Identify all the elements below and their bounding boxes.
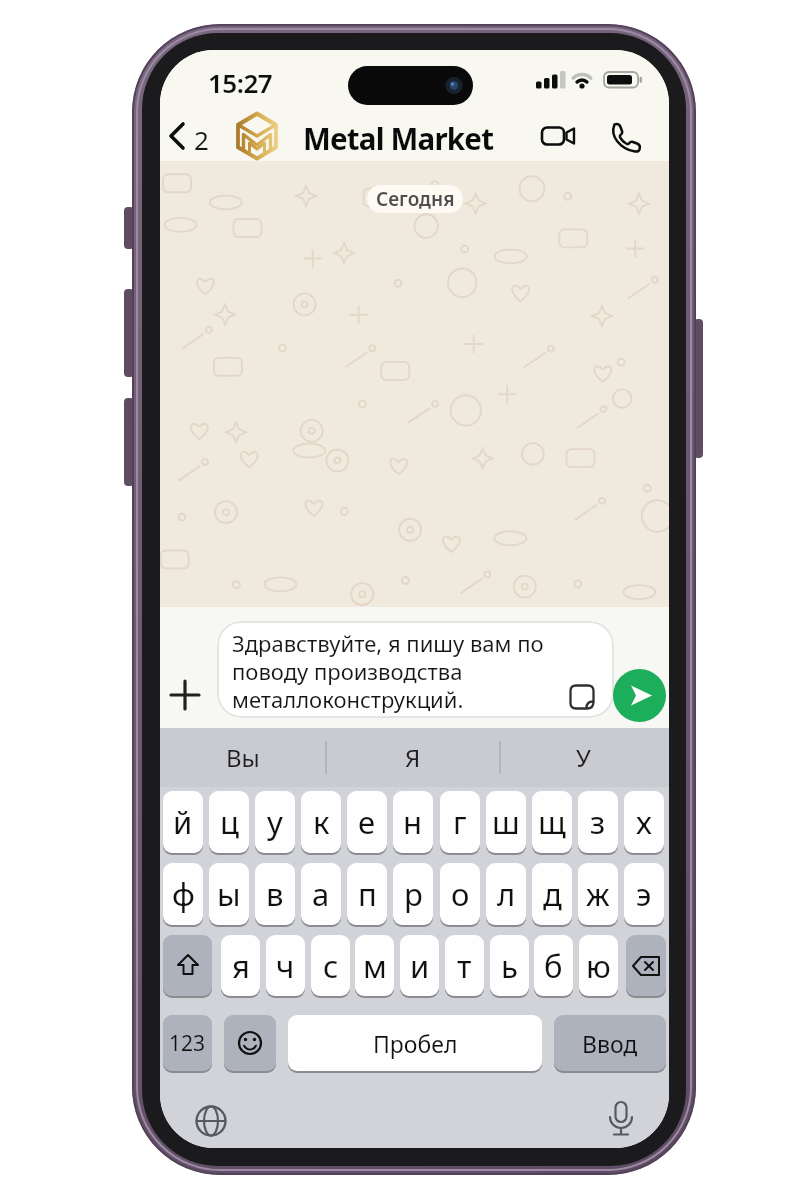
staticText: ы (217, 873, 241, 915)
staticText: ю (586, 945, 611, 987)
button[interactable]: х (624, 791, 664, 853)
staticText: я (232, 945, 250, 987)
staticText: Вы (226, 741, 260, 774)
button[interactable]: ф (163, 863, 203, 925)
button[interactable]: Ввод (554, 1015, 666, 1071)
staticText: ж (586, 873, 610, 915)
button[interactable]: г (440, 791, 480, 853)
button[interactable]: у (255, 791, 295, 853)
staticText: Пробел (373, 1028, 458, 1059)
button[interactable]: й (163, 791, 203, 853)
staticText: ф (172, 873, 195, 915)
button[interactable] (162, 112, 362, 160)
button[interactable]: к (301, 791, 341, 853)
button[interactable]: э (624, 863, 664, 925)
staticText: с (323, 945, 339, 987)
staticText: л (497, 873, 516, 915)
button[interactable]: м (355, 935, 394, 996)
button[interactable]: т (445, 935, 484, 996)
button[interactable]: л (486, 863, 526, 925)
staticText: Ввод (582, 1028, 638, 1059)
button[interactable] (626, 935, 666, 996)
staticText: б (544, 945, 563, 987)
button[interactable]: е (347, 791, 387, 853)
staticText: р (404, 873, 423, 915)
button[interactable]: р (393, 863, 433, 925)
button[interactable] (180, 1090, 242, 1148)
button[interactable]: с (311, 935, 350, 996)
staticText: в (266, 873, 284, 915)
staticText: Здравствуйте, я пишу вам по поводу произ… (232, 628, 544, 715)
button[interactable]: ж (578, 863, 618, 925)
button[interactable]: щ (532, 791, 572, 853)
button[interactable]: ю (579, 935, 618, 996)
staticText: 2 (194, 122, 209, 150)
button[interactable]: я (221, 935, 260, 996)
button[interactable] (224, 1015, 276, 1071)
button[interactable]: ь (490, 935, 529, 996)
staticText: п (358, 873, 377, 915)
button[interactable]: б (534, 935, 573, 996)
staticText: Сегодня (376, 186, 455, 212)
staticText: ц (220, 801, 239, 843)
button[interactable]: в (255, 863, 295, 925)
button[interactable]: а (301, 863, 341, 925)
button[interactable]: о (440, 863, 480, 925)
button[interactable]: и (400, 935, 439, 996)
button[interactable] (500, 728, 669, 787)
staticText: У (576, 741, 591, 774)
staticText: к (313, 801, 330, 843)
staticText: е (358, 801, 376, 843)
staticText: н (403, 801, 423, 843)
button[interactable]: Пробел (288, 1015, 542, 1071)
staticText: и (410, 945, 430, 987)
button[interactable] (608, 120, 644, 152)
button[interactable] (160, 728, 329, 787)
button[interactable]: ш (486, 791, 526, 853)
button[interactable]: 123 (163, 1015, 212, 1071)
button[interactable] (590, 1090, 652, 1148)
button[interactable] (330, 728, 499, 787)
staticText: у (267, 801, 283, 843)
staticText: а (312, 873, 330, 915)
button[interactable]: ч (266, 935, 305, 996)
staticText: Metal Market (303, 118, 494, 154)
button[interactable] (160, 670, 210, 720)
button[interactable]: н (393, 791, 433, 853)
staticText: м (363, 945, 387, 987)
staticText: х (636, 801, 652, 843)
staticText: ш (492, 801, 520, 843)
staticText: щ (538, 801, 566, 843)
button[interactable]: п (347, 863, 387, 925)
staticText: о (451, 873, 470, 915)
button[interactable]: д (532, 863, 572, 925)
button[interactable]: ы (209, 863, 249, 925)
button[interactable] (535, 120, 581, 152)
button[interactable] (613, 669, 666, 722)
staticText: г (453, 801, 467, 843)
staticText: й (173, 801, 193, 843)
staticText: 123 (169, 1029, 206, 1058)
staticText: э (636, 873, 652, 915)
staticText: ч (276, 945, 295, 987)
button[interactable]: з (578, 791, 618, 853)
staticText: т (457, 945, 472, 987)
staticText: ь (501, 945, 518, 987)
staticText: д (543, 873, 562, 915)
button[interactable]: ц (209, 791, 249, 853)
staticText: Я (405, 741, 421, 774)
staticText: 15:27 (208, 65, 273, 93)
button[interactable] (163, 935, 212, 996)
staticText: з (590, 801, 606, 843)
